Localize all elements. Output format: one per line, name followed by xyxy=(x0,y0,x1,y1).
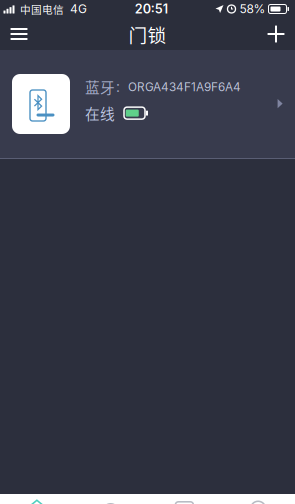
staticText: 蓝牙 xyxy=(85,76,115,97)
staticText: 中国电信 xyxy=(20,1,64,17)
staticText: 4G xyxy=(70,2,87,16)
button[interactable]: 首页 xyxy=(0,494,74,504)
staticText: 20:51 xyxy=(135,1,168,17)
staticText: ORGA434F1A9F6A4 xyxy=(128,80,241,94)
button[interactable]: Add xyxy=(257,18,295,50)
staticText: 在线 xyxy=(85,102,115,124)
button[interactable]: 我的 xyxy=(221,494,295,504)
button[interactable]: 蓝牙 xyxy=(0,50,295,158)
staticText: 门锁 xyxy=(128,20,166,47)
staticText: 58% xyxy=(239,2,265,16)
button[interactable]: Menu xyxy=(0,18,38,50)
staticText: ： xyxy=(115,78,127,96)
button[interactable]: 消息 xyxy=(147,494,221,504)
button[interactable]: 场景 xyxy=(74,494,148,504)
